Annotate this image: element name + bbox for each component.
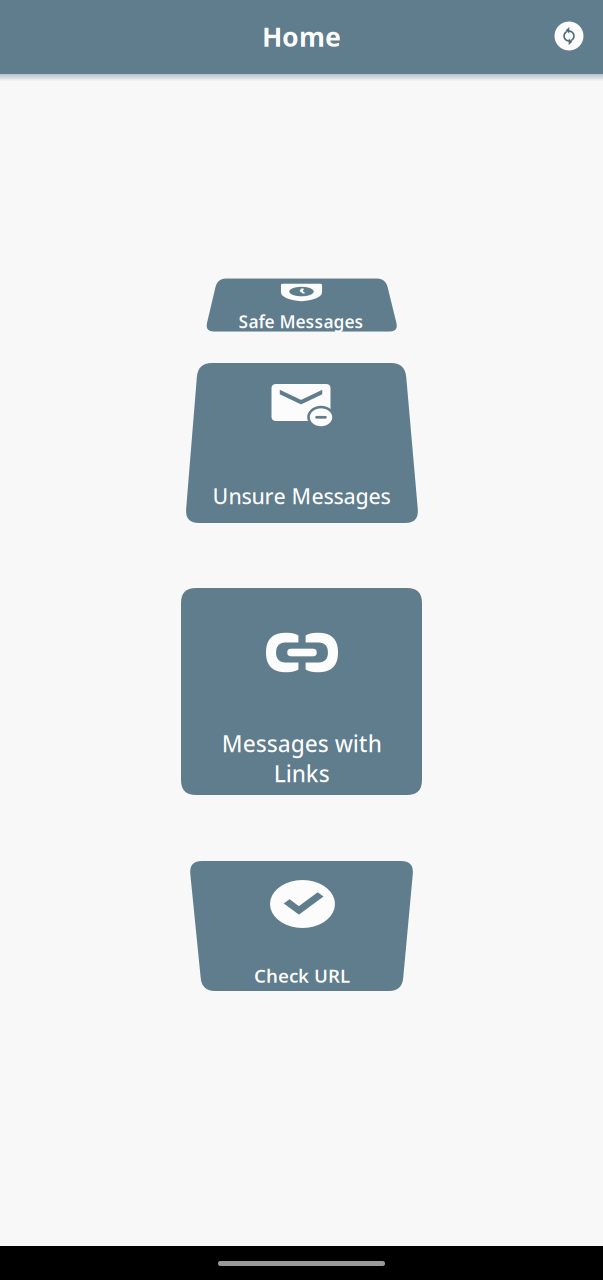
button[interactable]: Safe Messages (205, 278, 398, 331)
button[interactable]: Messages with Links (181, 588, 422, 795)
staticText: Home (262, 19, 341, 54)
staticText: Messages with Links (221, 728, 381, 789)
staticText: Check URL (254, 963, 350, 988)
staticText: Safe Messages (238, 310, 363, 333)
button[interactable]: Refresh (547, 14, 591, 58)
button[interactable]: Unsure Messages (185, 363, 419, 523)
button[interactable]: Check URL (189, 861, 414, 991)
staticText: Unsure Messages (212, 482, 390, 510)
